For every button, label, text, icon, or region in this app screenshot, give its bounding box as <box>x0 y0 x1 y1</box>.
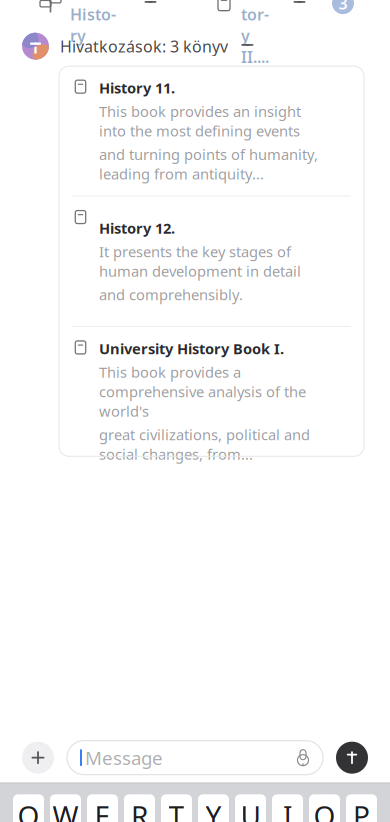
staticText: great civilizations, political and socia… <box>99 425 310 464</box>
staticText: and comprehensibly. <box>99 285 243 304</box>
button[interactable]: Send <box>336 742 368 774</box>
button[interactable]: Y <box>198 794 229 822</box>
button[interactable]: E <box>87 794 118 822</box>
staticText: T <box>168 797 184 822</box>
button[interactable]: P <box>346 794 377 822</box>
button[interactable]: History 11. <box>59 66 364 196</box>
staticText: History <box>70 4 116 46</box>
button[interactable]: I <box>272 794 303 822</box>
staticText: University History Book I. <box>99 339 284 358</box>
staticText: Q <box>17 797 39 822</box>
button[interactable]: O <box>309 794 340 822</box>
staticText: E <box>94 797 110 822</box>
button[interactable]: Q <box>13 794 44 822</box>
button[interactable]: Topics <box>24 0 188 22</box>
staticText: History 12. <box>99 218 175 238</box>
staticText: This book provides a comprehensive analy… <box>99 362 306 421</box>
button[interactable]: History 12. <box>59 197 364 326</box>
staticText: and turning points of humanity, leading … <box>99 145 318 184</box>
staticText: Message <box>85 745 163 770</box>
button[interactable]: Book <box>202 0 366 22</box>
staticText: 3 <box>338 0 347 14</box>
staticText: I <box>283 797 292 822</box>
staticText: It presents the key stages of human deve… <box>99 242 301 281</box>
button[interactable]: R <box>124 794 155 822</box>
staticText: Y <box>205 797 221 822</box>
button[interactable]: Add attachment <box>22 742 54 774</box>
button[interactable]: Message <box>67 741 323 775</box>
button[interactable]: Hivatkozások: 3 könyv <box>60 30 254 62</box>
staticText: R <box>131 797 148 822</box>
staticText: This book provides an insight into the m… <box>99 102 301 141</box>
staticText: Hivatkozások: 3 könyv <box>60 35 228 57</box>
staticText: O <box>313 797 335 822</box>
staticText: History 11. <box>99 78 175 98</box>
staticText: W <box>52 797 78 822</box>
button[interactable]: W <box>50 794 81 822</box>
staticText: U <box>240 797 260 822</box>
button[interactable]: T <box>161 794 192 822</box>
staticText: P <box>353 797 370 822</box>
staticText: History II.... <box>241 0 271 67</box>
button[interactable]: University History Book I. <box>59 327 364 476</box>
button[interactable]: U <box>235 794 266 822</box>
